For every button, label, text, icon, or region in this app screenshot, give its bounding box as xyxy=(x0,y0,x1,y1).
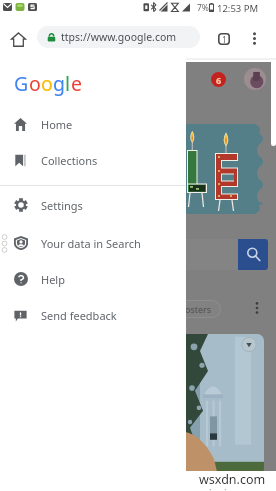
button[interactable]: Search box xyxy=(14,239,268,270)
button[interactable]: Home xyxy=(0,107,186,141)
staticText: l xyxy=(65,70,71,97)
staticText: g xyxy=(53,70,65,97)
button[interactable]: Your data in Search xyxy=(0,226,186,260)
staticText: Send feedback xyxy=(41,308,117,323)
staticText: ttps://www.google.com xyxy=(61,30,177,44)
staticText: o xyxy=(41,70,53,97)
staticText: Your data in Search xyxy=(41,236,141,251)
staticText: wsxdn.com xyxy=(199,471,266,488)
button[interactable]: Account xyxy=(244,68,266,90)
button[interactable]: Article photo xyxy=(14,334,264,476)
button[interactable]: Notifications xyxy=(211,72,226,87)
staticText: o xyxy=(29,70,41,97)
staticText: Home xyxy=(41,117,73,132)
button[interactable]: Popular posters xyxy=(14,300,221,318)
button[interactable]: Help xyxy=(0,262,186,296)
button[interactable]: More xyxy=(250,298,264,318)
button[interactable]: More options xyxy=(242,26,267,51)
staticText: 6 xyxy=(216,74,222,86)
button[interactable]: Tabs xyxy=(211,26,236,51)
staticText: 12:53 PM xyxy=(217,2,259,15)
button[interactable]: Collections xyxy=(0,143,186,177)
staticText: Settings xyxy=(41,198,83,213)
button[interactable]: Send feedback xyxy=(0,298,186,332)
staticText: Collections xyxy=(41,153,98,168)
staticText: Popular posters xyxy=(144,303,212,315)
button[interactable]: Search xyxy=(238,239,268,270)
button[interactable]: Address bar xyxy=(37,26,200,48)
staticText: G xyxy=(14,70,29,97)
staticText: 7% xyxy=(197,2,209,14)
staticText: Help xyxy=(41,272,65,287)
staticText: 1 xyxy=(222,34,227,45)
button[interactable]: Settings xyxy=(0,188,186,222)
staticText: e xyxy=(71,70,82,97)
button[interactable]: Home xyxy=(6,27,31,52)
staticText: enjoying xyxy=(196,485,241,491)
